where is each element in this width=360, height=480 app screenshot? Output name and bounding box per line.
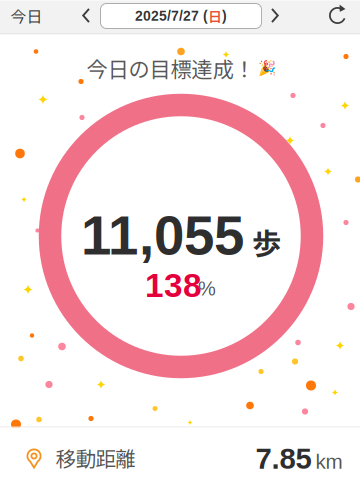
staticText: 138	[145, 267, 202, 304]
staticText: 日	[208, 6, 222, 26]
button[interactable]: Refresh	[318, 0, 358, 32]
staticText: 🎉	[257, 59, 275, 77]
button[interactable]: 2025/7/27 (	[100, 3, 261, 28]
staticText: km	[315, 450, 342, 473]
button[interactable]: Next day	[260, 0, 290, 32]
staticText: 歩	[252, 220, 281, 263]
button[interactable]: 移動距離	[0, 427, 360, 479]
staticText: 11,055	[81, 205, 244, 266]
staticText: 今日の目標達成！	[86, 53, 254, 83]
staticText: 2025/7/27 (	[135, 8, 208, 24]
staticText: 7.85	[255, 442, 311, 475]
button[interactable]: Previous day	[71, 0, 101, 32]
staticText: %	[198, 277, 216, 300]
button[interactable]: 今日	[0, 0, 54, 32]
staticText: 移動距離	[55, 443, 135, 472]
staticText: )	[222, 8, 227, 24]
staticText: 今日	[10, 4, 42, 27]
